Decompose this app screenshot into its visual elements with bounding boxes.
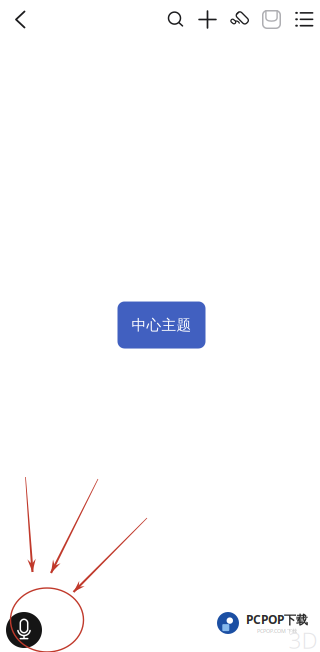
button[interactable]: Add topic [191, 0, 223, 39]
button[interactable]: Search [159, 0, 191, 39]
button[interactable]: Style [223, 0, 255, 39]
staticText: PCPOP下载 [246, 611, 308, 627]
button[interactable]: Outline [288, 0, 320, 39]
button[interactable]: 中心主题 [117, 301, 205, 348]
button[interactable]: Voice input [6, 612, 42, 648]
staticText: 3D [288, 625, 317, 652]
button[interactable]: Back [0, 0, 40, 39]
button[interactable]: Save [255, 0, 287, 39]
staticText: 中心主题 [131, 316, 191, 334]
staticText: PCPOP.COM 下载 [257, 627, 297, 634]
